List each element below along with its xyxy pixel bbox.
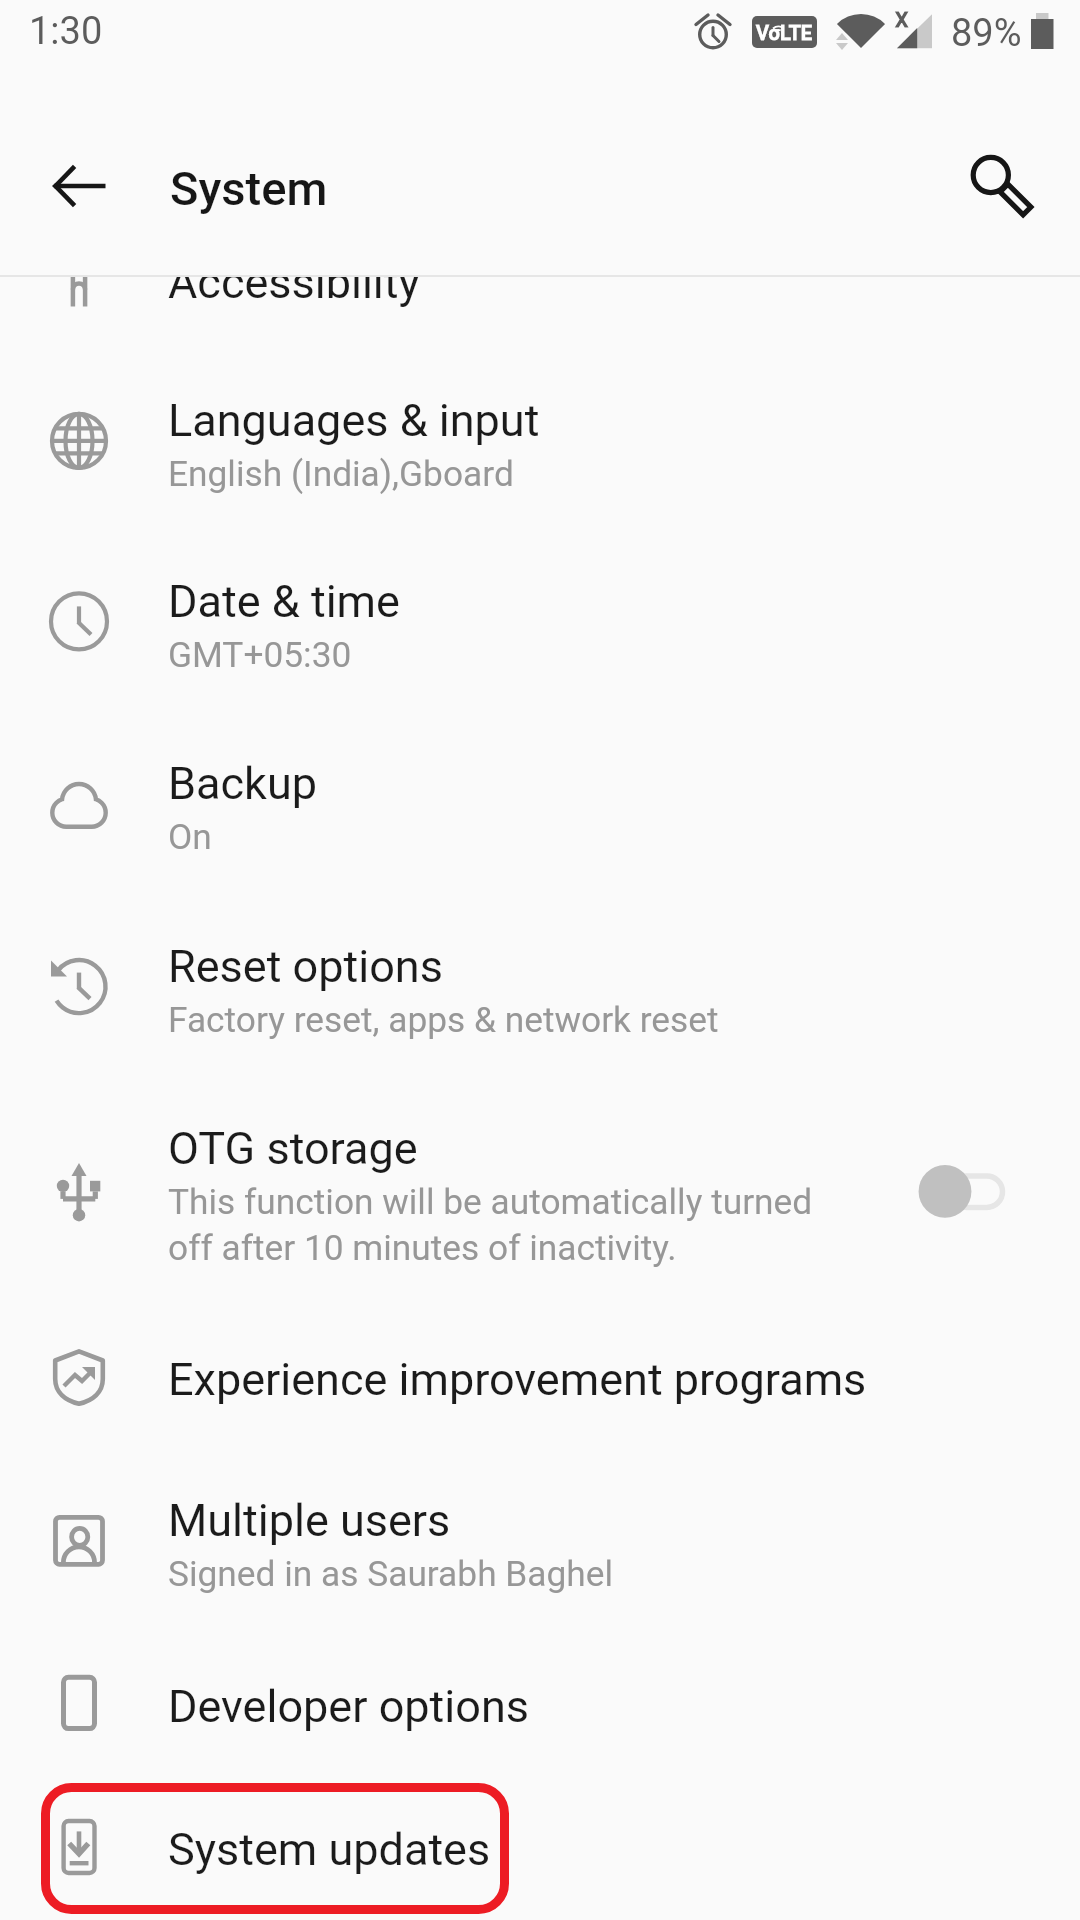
staticText: Experience improvement programs: [168, 1353, 867, 1406]
button[interactable]: Backup: [0, 737, 1080, 877]
button[interactable]: Experience improvement programs: [0, 1331, 1080, 1423]
staticText: VoLTE: [756, 21, 813, 44]
button[interactable]: Reset options: [0, 920, 1080, 1060]
button[interactable]: Back: [32, 138, 128, 234]
staticText: Backup: [168, 757, 317, 810]
staticText: Languages & input: [168, 394, 540, 447]
staticText: Multiple users: [168, 1494, 451, 1547]
staticText: Date & time: [168, 575, 400, 628]
button[interactable]: OTG storage: [0, 1102, 1080, 1288]
button[interactable]: Accessibility: [0, 236, 1080, 339]
staticText: Developer options: [168, 1680, 529, 1733]
staticText: Factory reset, apps & network reset: [168, 999, 719, 1040]
staticText: English (India),Gboard: [168, 453, 514, 494]
button[interactable]: Developer options: [0, 1657, 1080, 1750]
staticText: On: [168, 816, 212, 857]
staticText: 89%: [951, 11, 1022, 56]
button[interactable]: Multiple users: [0, 1474, 1080, 1614]
staticText: Accessibility: [168, 256, 420, 309]
button[interactable]: Date & time: [0, 555, 1080, 695]
staticText: Reset options: [168, 940, 443, 993]
staticText: Signed in as Saurabh Baghel: [168, 1553, 614, 1594]
button[interactable]: Languages & input: [0, 374, 1080, 514]
button[interactable]: Search: [944, 138, 1040, 234]
button[interactable]: System updates: [0, 1801, 1080, 1893]
staticText: System updates: [168, 1823, 491, 1876]
staticText: System: [170, 161, 328, 216]
staticText: This function will be automatically turn…: [168, 1181, 813, 1222]
staticText: 1:30: [29, 9, 103, 54]
staticText: off after 10 minutes of inactivity.: [168, 1227, 677, 1268]
staticText: OTG storage: [168, 1122, 418, 1175]
staticText: X: [895, 8, 909, 33]
staticText: GMT+05:30: [168, 634, 352, 675]
